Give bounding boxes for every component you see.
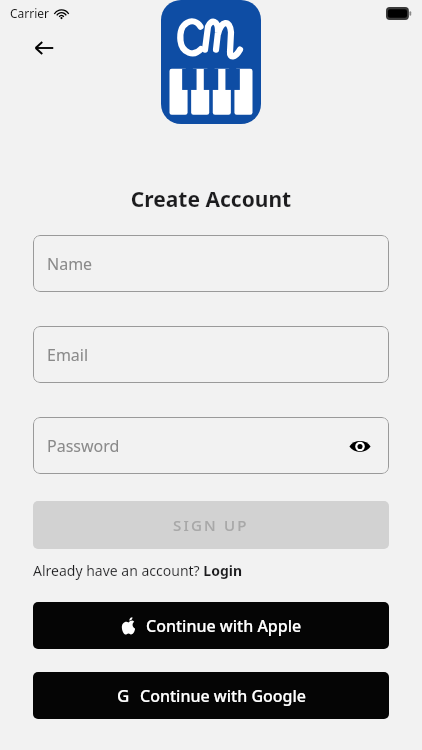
button[interactable]: Password [33, 417, 389, 474]
staticText: G [117, 684, 130, 707]
button[interactable]: Show password [345, 431, 375, 461]
staticText: 10:12 PM [185, 5, 238, 21]
button[interactable]: Already have an account? Login [33, 561, 243, 580]
button[interactable]: Continue with Apple [33, 602, 389, 649]
button[interactable]: Name [33, 235, 389, 292]
staticText: Continue with Google [140, 685, 306, 707]
button[interactable]: Back [24, 28, 64, 68]
button[interactable]: SIGN UP [33, 501, 389, 549]
button[interactable]: G [33, 672, 389, 719]
staticText: Name [47, 253, 375, 275]
staticText: Continue with Apple [146, 615, 302, 637]
button[interactable]: Email [33, 326, 389, 383]
staticText: Password [47, 435, 345, 457]
staticText: Email [47, 344, 375, 366]
staticText: SIGN UP [173, 515, 249, 535]
staticText: Already have an account? Login [33, 561, 243, 580]
staticText: Create Account [0, 185, 422, 214]
staticText: Carrier [10, 5, 50, 21]
